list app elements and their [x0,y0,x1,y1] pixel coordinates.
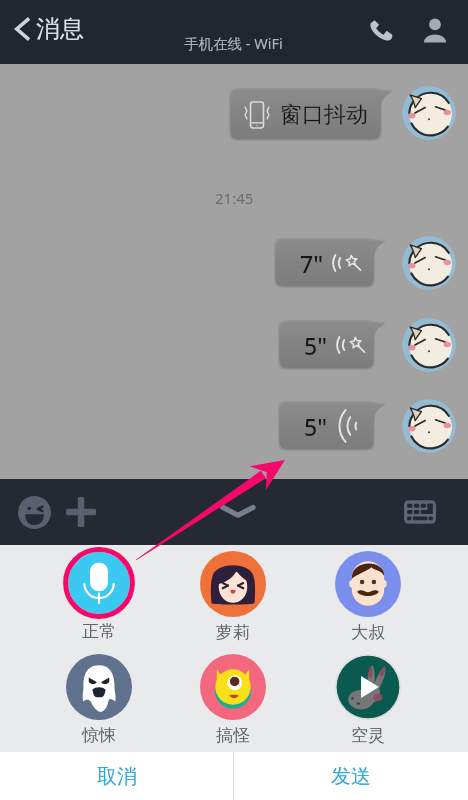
staticText: 发送 [331,764,371,789]
button[interactable]: Emoji [7,485,61,539]
button[interactable]: 搞怪 [178,651,288,746]
button[interactable]: 7" [274,238,386,288]
button[interactable]: 空灵 [313,651,423,746]
staticText: 大叔 [351,622,385,643]
staticText: 5" [304,330,328,361]
button[interactable]: 消息 [9,7,84,51]
staticText: 5" [304,411,328,442]
staticText: 惊悚 [82,725,116,746]
button[interactable]: 发送 [234,752,468,800]
button[interactable]: Add [54,485,108,539]
button[interactable]: 窗口抖动 [229,88,393,141]
button[interactable]: 正常 [44,547,154,642]
button[interactable]: Profile [412,7,458,53]
button[interactable]: 取消 [0,752,233,800]
button[interactable]: 5" [278,401,386,451]
staticText: 消息 [36,14,84,44]
button[interactable]: Avatar [402,236,456,290]
staticText: 窗口抖动 [280,101,368,129]
staticText: 萝莉 [216,622,250,643]
staticText: 正常 [82,621,116,642]
button[interactable]: Call [358,7,404,53]
staticText: 取消 [97,764,137,789]
staticText: 空灵 [351,725,385,746]
button[interactable]: 萝莉 [178,548,288,643]
button[interactable]: Avatar [402,318,456,372]
button[interactable]: Keyboard [393,485,447,539]
staticText: 7" [300,248,324,279]
staticText: 手机在线 - WiFi [184,33,283,53]
button[interactable]: Avatar [402,399,456,453]
button[interactable]: Collapse [211,484,265,538]
staticText: 21:45 [215,188,254,208]
button[interactable]: Avatar [402,86,456,140]
button[interactable]: 5" [278,320,386,370]
button[interactable]: 大叔 [313,548,423,643]
staticText: 搞怪 [216,725,250,746]
button[interactable]: 惊悚 [44,651,154,746]
